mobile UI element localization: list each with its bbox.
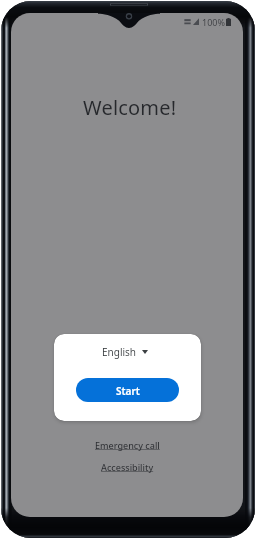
staticText: Start [116,384,140,398]
staticText: English [102,345,137,359]
staticText: Welcome! [83,94,177,121]
button[interactable]: Accessibility [95,459,160,475]
staticText: 100% [202,16,225,28]
staticText: Accessibility [101,461,154,473]
button[interactable]: Start [76,378,179,402]
staticText: Emergency call [95,439,160,451]
button[interactable]: English [98,343,152,361]
button[interactable]: Emergency call [89,437,166,453]
